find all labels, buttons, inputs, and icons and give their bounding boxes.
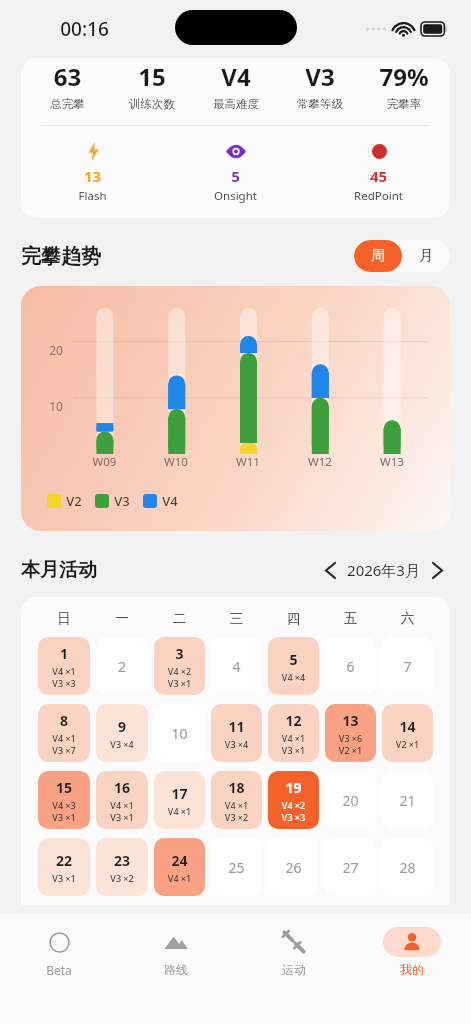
staticText: 12 xyxy=(268,711,319,730)
staticText: 22 xyxy=(38,851,90,870)
button[interactable]: 23 xyxy=(96,838,148,896)
button[interactable]: 12 xyxy=(268,704,319,762)
staticText: V3 xyxy=(278,60,362,93)
button[interactable]: 运动 xyxy=(235,914,353,990)
button[interactable]: 21 xyxy=(382,771,433,829)
staticText: V4 ×2 xyxy=(154,665,205,677)
staticText: 五 xyxy=(322,610,379,627)
button[interactable]: 24 xyxy=(154,838,205,896)
staticText: 13 xyxy=(21,166,164,186)
button[interactable]: 5 xyxy=(268,637,319,695)
staticText: 2026年3月 xyxy=(347,560,420,580)
staticText: 月 xyxy=(419,247,433,265)
button[interactable]: 17 xyxy=(154,771,205,829)
staticText: 5 xyxy=(268,650,319,669)
staticText: 15 xyxy=(110,60,194,93)
button[interactable]: 10 xyxy=(154,704,205,762)
button[interactable]: 19 xyxy=(268,771,319,829)
staticText: 13 xyxy=(325,711,376,730)
staticText: V2 xyxy=(66,492,82,510)
staticText: V3 ×4 xyxy=(96,738,148,750)
button[interactable]: Next month xyxy=(424,557,450,583)
staticText: 21 xyxy=(382,791,433,810)
staticText: 3 xyxy=(154,644,205,663)
button[interactable]: 3 xyxy=(154,637,205,695)
button[interactable]: 28 xyxy=(382,838,433,896)
staticText: 28 xyxy=(382,858,433,877)
staticText: 2 xyxy=(96,657,148,676)
staticText: 26 xyxy=(268,858,319,877)
button[interactable]: 我的 xyxy=(353,914,471,990)
staticText: V3 ×7 xyxy=(38,744,90,756)
staticText: W11 xyxy=(212,454,284,470)
button[interactable]: 25 xyxy=(211,838,262,896)
button[interactable]: 周 xyxy=(354,240,402,272)
staticText: 4 xyxy=(211,657,262,676)
button[interactable]: 27 xyxy=(325,838,376,896)
button[interactable]: Beta xyxy=(0,914,117,990)
staticText: 7 xyxy=(382,657,433,676)
staticText: V4 ×1 xyxy=(268,732,319,744)
button[interactable]: 9 xyxy=(96,704,148,762)
staticText: 20 xyxy=(325,791,376,810)
staticText: W10 xyxy=(140,454,212,470)
staticText: 四 xyxy=(265,610,322,627)
button[interactable]: 13 xyxy=(325,704,376,762)
button[interactable]: 月 xyxy=(402,240,450,272)
button[interactable]: 7 xyxy=(382,637,433,695)
staticText: 19 xyxy=(268,778,319,797)
staticText: V3 ×6 xyxy=(325,732,376,744)
staticText: 79% xyxy=(362,60,446,93)
staticText: V4 xyxy=(162,492,178,510)
staticText: V3 xyxy=(114,492,130,510)
staticText: 最高难度 xyxy=(194,97,278,111)
staticText: 总完攀 xyxy=(25,97,110,111)
button[interactable]: 15 xyxy=(38,771,90,829)
button[interactable]: 8 xyxy=(38,704,90,762)
staticText: 9 xyxy=(96,717,148,736)
staticText: V4 ×1 xyxy=(38,732,90,744)
staticText: V4 ×4 xyxy=(268,671,319,683)
button[interactable]: 20 xyxy=(325,771,376,829)
button[interactable]: 14 xyxy=(382,704,433,762)
staticText: 00:16 xyxy=(60,16,109,42)
staticText: V3 ×1 xyxy=(38,811,90,823)
button[interactable]: 路线 xyxy=(117,914,235,990)
staticText: 63 xyxy=(25,60,110,93)
staticText: 15 xyxy=(38,778,90,797)
staticText: V4 xyxy=(194,60,278,93)
staticText: W13 xyxy=(356,454,428,470)
button[interactable]: 18 xyxy=(211,771,262,829)
staticText: V3 ×2 xyxy=(96,872,148,884)
staticText: V4 ×1 xyxy=(154,872,205,884)
button[interactable]: 4 xyxy=(211,637,262,695)
staticText: 5 xyxy=(164,166,307,186)
staticText: 27 xyxy=(325,858,376,877)
button[interactable]: 2 xyxy=(96,637,148,695)
staticText: V3 ×2 xyxy=(211,811,262,823)
button[interactable]: Previous month xyxy=(317,557,343,583)
staticText: 6 xyxy=(325,657,376,676)
staticText: 路线 xyxy=(164,962,188,977)
staticText: 10 xyxy=(49,398,63,414)
staticText: 我的 xyxy=(400,962,424,977)
button[interactable]: 26 xyxy=(268,838,319,896)
staticText: 25 xyxy=(211,858,262,877)
staticText: 11 xyxy=(211,717,262,736)
button[interactable]: 1 xyxy=(38,637,90,695)
button[interactable]: 6 xyxy=(325,637,376,695)
staticText: V3 ×1 xyxy=(268,744,319,756)
button[interactable]: 16 xyxy=(96,771,148,829)
staticText: V4 ×1 xyxy=(38,665,90,677)
staticText: V3 ×3 xyxy=(268,811,319,823)
button[interactable]: 22 xyxy=(38,838,90,896)
staticText: V3 ×1 xyxy=(38,872,90,884)
staticText: 1 xyxy=(38,644,90,663)
staticText: 周 xyxy=(371,247,385,265)
staticText: 18 xyxy=(211,778,262,797)
staticText: V4 ×1 xyxy=(211,799,262,811)
staticText: V3 ×1 xyxy=(96,811,148,823)
staticText: 14 xyxy=(382,717,433,736)
button[interactable]: 11 xyxy=(211,704,262,762)
staticText: 24 xyxy=(154,851,205,870)
